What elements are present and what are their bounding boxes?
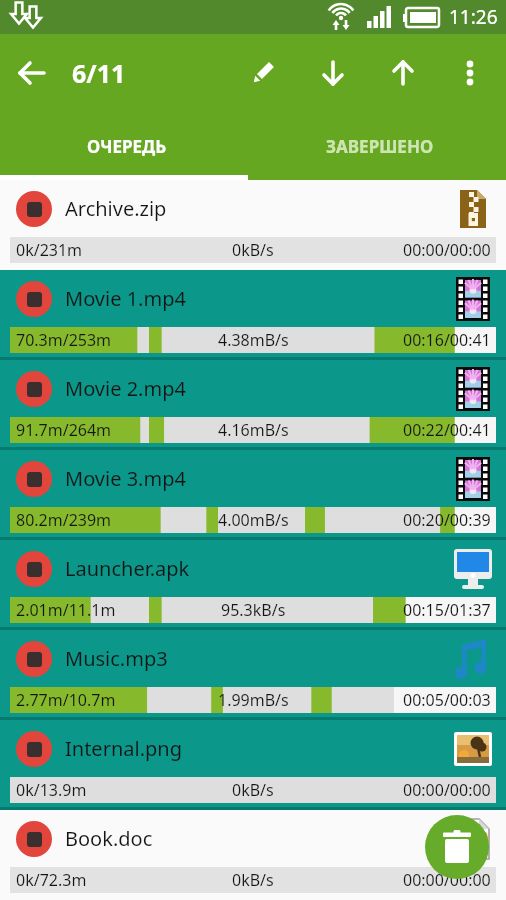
- staticText: 11:26: [449, 4, 498, 30]
- button[interactable]: Archive.zip: [0, 180, 506, 270]
- staticText: 2.77m/10.7m: [16, 689, 116, 711]
- staticText: 00:00/00:00: [403, 779, 491, 801]
- staticText: Music.mp3: [65, 645, 168, 672]
- button[interactable]: [16, 191, 52, 227]
- staticText: 0kB/s: [232, 239, 274, 261]
- staticText: 00:16/00:41: [403, 329, 491, 351]
- button[interactable]: Movie 3.mp4: [0, 450, 506, 540]
- staticText: Internal.png: [65, 735, 182, 762]
- button[interactable]: [16, 371, 52, 407]
- button[interactable]: [425, 815, 489, 879]
- button[interactable]: ЗАВЕРШЕНО: [253, 112, 506, 180]
- staticText: Movie 1.mp4: [65, 285, 186, 312]
- button[interactable]: [0, 41, 64, 105]
- button[interactable]: [228, 38, 298, 108]
- staticText: 0k/72.3m: [16, 869, 87, 891]
- staticText: 00:05/00:03: [403, 689, 491, 711]
- staticText: Archive.zip: [65, 195, 167, 222]
- staticText: 91.7m/264m: [16, 419, 112, 441]
- staticText: 00:00/00:00: [403, 869, 491, 891]
- staticText: 2.01m/11.1m: [16, 599, 116, 621]
- button[interactable]: Music.mp3: [0, 630, 506, 720]
- staticText: 70.3m/253m: [16, 329, 112, 351]
- button[interactable]: [16, 731, 52, 767]
- button[interactable]: Movie 1.mp4: [0, 270, 506, 360]
- staticText: Movie 3.mp4: [65, 465, 186, 492]
- staticText: Launcher.apk: [65, 555, 190, 582]
- staticText: 80.2m/239m: [16, 509, 112, 531]
- staticText: 95.3kB/s: [221, 599, 286, 621]
- button[interactable]: Book.doc: [0, 810, 506, 900]
- staticText: ЗАВЕРШЕНО: [326, 135, 434, 158]
- staticText: 0kB/s: [232, 779, 274, 801]
- staticText: Book.doc: [65, 825, 153, 852]
- staticText: 4.38mB/s: [218, 329, 289, 351]
- staticText: 00:15/01:37: [403, 599, 491, 621]
- button[interactable]: ОЧЕРЕДЬ: [0, 112, 253, 180]
- staticText: 4.00mB/s: [218, 509, 289, 531]
- button[interactable]: [16, 461, 52, 497]
- button[interactable]: Movie 2.mp4: [0, 360, 506, 450]
- button[interactable]: [16, 281, 52, 317]
- button[interactable]: [438, 41, 502, 105]
- staticText: 6/11: [72, 56, 126, 90]
- staticText: 0k/13.9m: [16, 779, 87, 801]
- button[interactable]: Launcher.apk: [0, 540, 506, 630]
- button[interactable]: [298, 38, 368, 108]
- button[interactable]: [16, 551, 52, 587]
- staticText: 0kB/s: [232, 869, 274, 891]
- button[interactable]: [16, 821, 52, 857]
- staticText: 0k/231m: [16, 239, 83, 261]
- staticText: 00:22/00:41: [403, 419, 491, 441]
- button[interactable]: Internal.png: [0, 720, 506, 810]
- button[interactable]: [368, 38, 438, 108]
- staticText: Movie 2.mp4: [65, 375, 186, 402]
- staticText: ОЧЕРЕДЬ: [87, 135, 167, 158]
- staticText: 00:20/00:39: [403, 509, 491, 531]
- staticText: 4.16mB/s: [218, 419, 289, 441]
- staticText: 1.99mB/s: [218, 689, 289, 711]
- button[interactable]: [16, 641, 52, 677]
- staticText: 00:00/00:00: [403, 239, 491, 261]
